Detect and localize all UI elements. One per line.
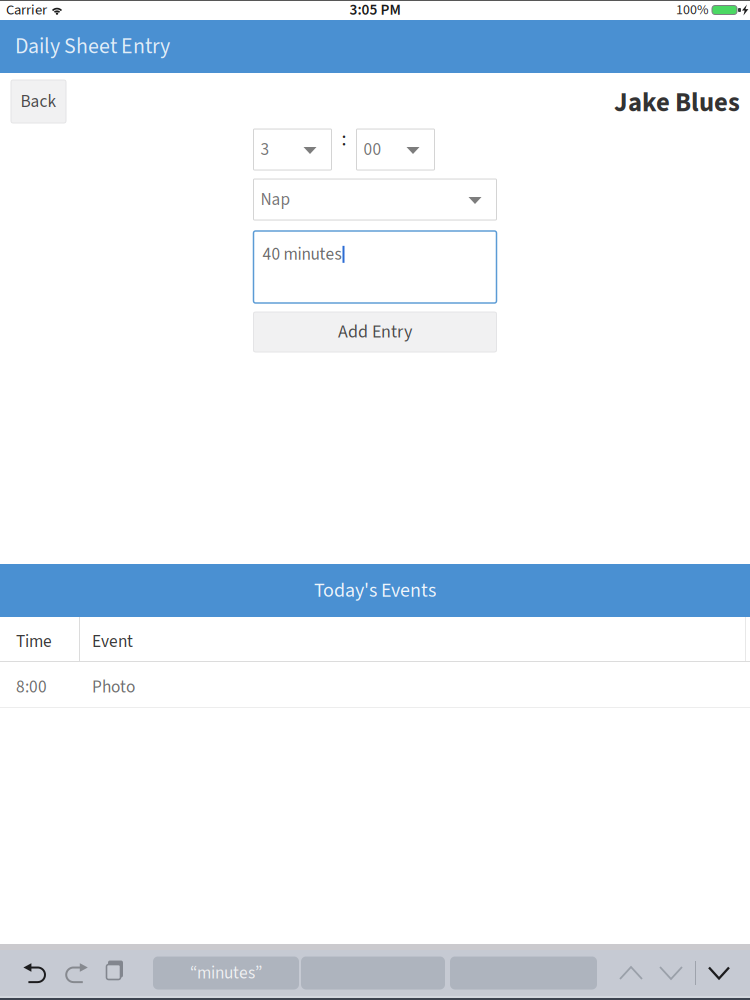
staticText: Add Entry <box>338 319 412 345</box>
staticText: 3:05 PM <box>349 0 400 21</box>
staticText: Today's Events <box>314 576 436 605</box>
button[interactable]: Back <box>11 80 66 123</box>
button[interactable]: “minutes” <box>153 956 299 989</box>
button[interactable]: 00 <box>356 129 434 170</box>
staticText: Back <box>20 89 56 114</box>
staticText: Event <box>92 629 133 654</box>
staticText: Time <box>16 629 52 654</box>
button[interactable]: Add Entry <box>253 312 496 352</box>
button[interactable]: 3 <box>253 129 331 170</box>
staticText: “minutes” <box>190 961 262 985</box>
button[interactable] <box>450 956 597 989</box>
button[interactable]: Previous field <box>620 967 642 979</box>
staticText: : <box>341 125 346 153</box>
staticText: Carrier <box>6 0 47 20</box>
staticText: Jake Blues <box>614 84 740 122</box>
button[interactable]: Undo <box>23 963 45 982</box>
staticText: 40 minutes <box>262 242 341 267</box>
button[interactable]: Nap <box>253 179 496 220</box>
button[interactable]: Redo <box>66 963 88 982</box>
button[interactable]: Next field <box>660 967 682 979</box>
button[interactable]: Dismiss keyboard <box>709 967 729 978</box>
staticText: 100% <box>676 0 709 20</box>
button[interactable] <box>301 956 445 989</box>
staticText: Daily Sheet Entry <box>15 31 170 62</box>
staticText: 00 <box>363 137 381 162</box>
button[interactable]: Paste <box>108 962 127 983</box>
staticText: Photo <box>92 675 135 699</box>
staticText: 8:00 <box>16 675 47 699</box>
staticText: Nap <box>260 187 290 212</box>
staticText: 3 <box>260 137 269 162</box>
